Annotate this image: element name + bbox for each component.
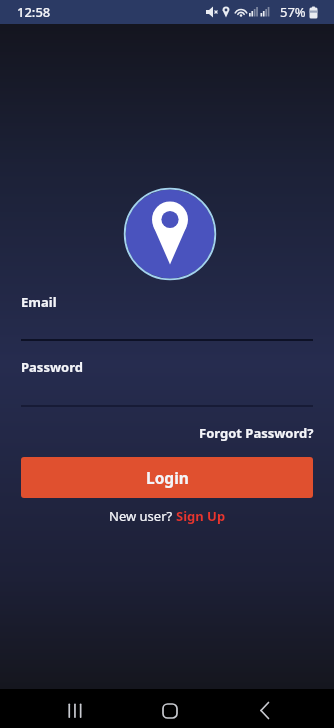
- staticText: 12:58: [17, 3, 51, 21]
- button[interactable]: Login: [21, 457, 313, 498]
- staticText: Sign Up: [176, 507, 226, 525]
- button[interactable]: [124, 188, 216, 280]
- staticText: 57%: [280, 3, 306, 21]
- staticText: Password: [21, 358, 83, 376]
- staticText: Email: [21, 293, 57, 311]
- staticText: Login: [146, 467, 189, 488]
- button[interactable]: [21, 373, 313, 406]
- staticText: New user?: [109, 507, 176, 525]
- staticText: Forgot Password?: [199, 424, 314, 442]
- button[interactable]: Forgot Password?: [199, 424, 314, 442]
- button[interactable]: [217, 689, 309, 728]
- button[interactable]: Sign Up: [176, 507, 226, 525]
- button[interactable]: [21, 308, 313, 341]
- button[interactable]: [124, 689, 216, 728]
- button[interactable]: [29, 689, 121, 728]
